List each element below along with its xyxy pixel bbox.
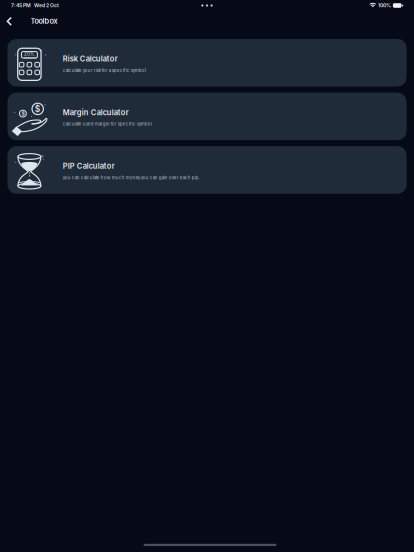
staticText: $ <box>35 104 41 114</box>
staticText: calculate used margin for specific symbo… <box>63 121 152 127</box>
staticText: 20% <box>24 51 34 57</box>
staticText: Risk Calculator <box>63 54 118 63</box>
button[interactable]: Back <box>0 12 19 30</box>
button[interactable]: 20% <box>7 39 406 86</box>
button[interactable]: $ <box>7 93 406 140</box>
staticText: calculate your risk for a specific symbo… <box>63 68 146 73</box>
button[interactable]: PIP Calculator <box>7 146 406 194</box>
staticText: 7:45 PM Wed 2 Oct <box>11 2 59 8</box>
staticText: 100% <box>378 2 391 8</box>
staticText: you can calculate how much money you can… <box>63 175 200 180</box>
staticText: PIP Calculator <box>63 161 115 171</box>
staticText: $ <box>21 110 24 117</box>
staticText: Toolbox <box>31 17 58 25</box>
staticText: Margin Calculator <box>63 108 129 117</box>
